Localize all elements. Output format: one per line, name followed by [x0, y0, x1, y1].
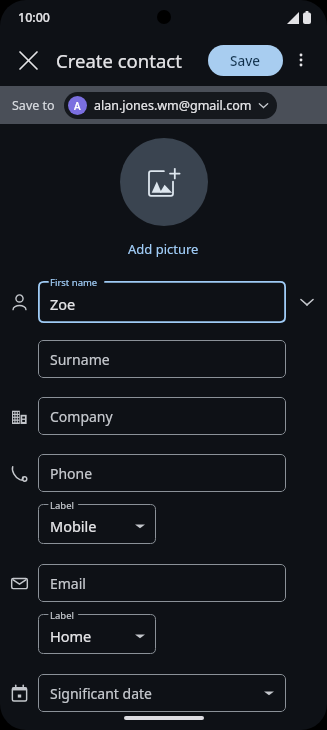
staticText: Significant date — [50, 684, 152, 703]
staticText: Surname — [50, 350, 110, 369]
staticText: Company — [50, 407, 113, 426]
staticText: Phone — [50, 464, 93, 483]
staticText: Label — [50, 609, 74, 622]
staticText: Save to — [12, 97, 55, 114]
button[interactable]: Close — [8, 40, 48, 80]
button[interactable]: Add picture — [120, 238, 207, 260]
staticText: First name — [50, 276, 98, 289]
staticText: Zoe — [50, 294, 76, 314]
button[interactable]: A — [64, 92, 277, 119]
button[interactable]: Save — [208, 45, 283, 76]
button[interactable]: First name — [38, 281, 286, 323]
staticText: Mobile — [50, 516, 97, 536]
button[interactable]: Label — [38, 614, 156, 654]
staticText: Label — [50, 499, 74, 512]
button[interactable]: Phone — [38, 454, 286, 492]
button[interactable]: More options — [283, 42, 319, 78]
button[interactable]: Expand name fields — [286, 280, 327, 324]
button[interactable]: Surname — [38, 340, 286, 378]
button[interactable]: Add picture — [120, 138, 208, 226]
staticText: Save — [230, 52, 261, 70]
button[interactable]: Company — [38, 397, 286, 435]
staticText: 10:00 — [18, 9, 51, 26]
button[interactable]: Significant date — [38, 674, 286, 712]
staticText: A — [74, 99, 81, 113]
staticText: Add picture — [128, 240, 199, 258]
staticText: Create contact — [56, 48, 182, 73]
staticText: alan.jones.wm@gmail.com — [94, 97, 252, 114]
button[interactable]: Label — [38, 504, 156, 544]
staticText: Email — [50, 574, 86, 593]
staticText: Home — [50, 626, 92, 646]
button[interactable]: Email — [38, 564, 286, 602]
